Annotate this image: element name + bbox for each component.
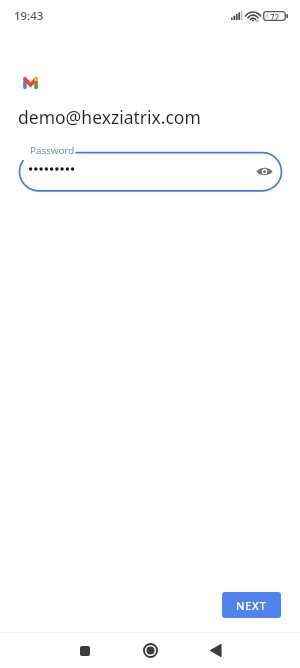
button[interactable]: Show password <box>252 159 276 183</box>
staticText: NEXT <box>236 598 267 613</box>
button[interactable]: Recents <box>67 633 103 668</box>
staticText: 19:43 <box>14 8 44 24</box>
button[interactable]: NEXT <box>222 592 281 618</box>
staticText: 72 <box>270 12 280 23</box>
staticText: Password <box>30 144 75 157</box>
button[interactable]: Home <box>132 633 168 668</box>
staticText: demo@hexziatrix.com <box>18 105 201 129</box>
button[interactable]: Back <box>197 633 233 668</box>
